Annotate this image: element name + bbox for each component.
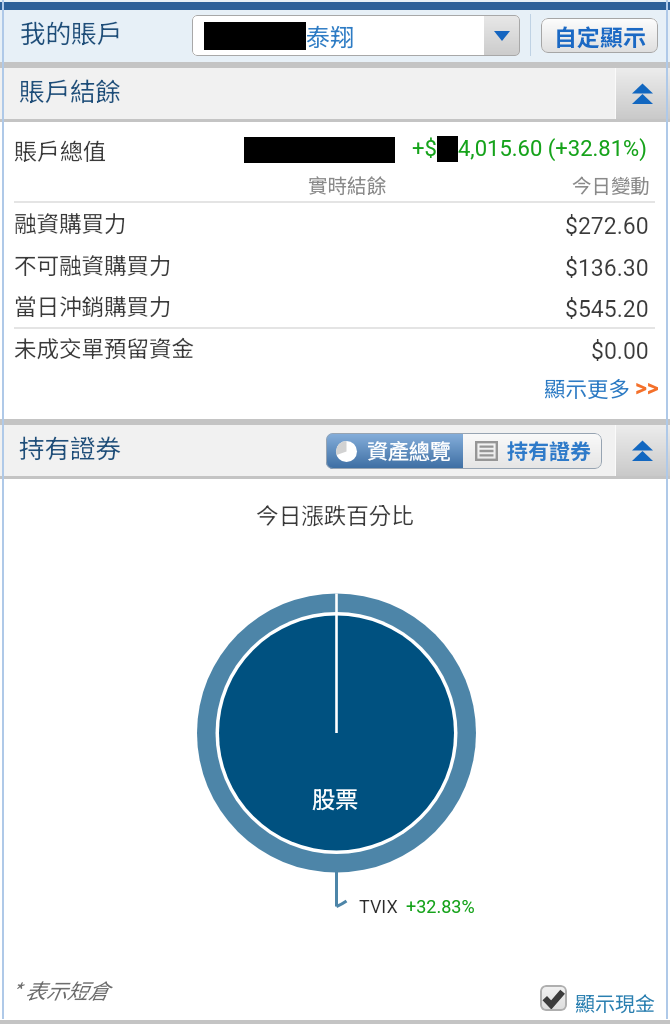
button[interactable]: 顯示更多 (544, 372, 659, 403)
button[interactable]: 融資購買力 (0, 203, 670, 244)
staticText: 不可融資購買力 (14, 248, 172, 281)
staticText: TVIX (359, 896, 398, 917)
staticText: $272.60 (565, 213, 649, 240)
staticText: 泰翔 (306, 18, 354, 53)
staticText: 持有證券 (507, 435, 591, 465)
button[interactable]: 持有證券 (463, 433, 602, 469)
staticText: +$ (412, 136, 437, 162)
staticText: 資產總覽 (367, 435, 451, 465)
button[interactable]: Collapse section (615, 68, 670, 119)
staticText: 4,015.60 (+32.81%) (458, 136, 647, 162)
staticText: >> (635, 375, 659, 402)
staticText: 今日漲跌百分比 (0, 498, 670, 531)
staticText: 融資購買力 (14, 206, 127, 239)
other: Select account (484, 15, 520, 56)
staticText: * 表示短倉 (10, 975, 109, 1005)
staticText: $136.30 (565, 255, 649, 282)
staticText: $0.00 (591, 338, 649, 365)
button[interactable]: 當日沖銷購買力 (0, 286, 670, 327)
staticText: 我的賬戶 (20, 13, 123, 50)
staticText: 今日變動 (572, 170, 651, 198)
button[interactable]: Collapse section (615, 425, 670, 476)
staticText: 賬戶總值 (14, 133, 106, 166)
button[interactable]: 顯示現金 (540, 983, 655, 1012)
staticText: 賬戶結餘 (19, 71, 122, 108)
button[interactable]: 泰翔 (192, 15, 520, 56)
staticText: 持有證券 (19, 428, 122, 465)
staticText: 自定顯示 (554, 19, 646, 52)
staticText: $545.20 (565, 296, 649, 323)
staticText: 當日沖銷購買力 (14, 289, 172, 322)
button[interactable]: 資產總覽 (326, 433, 463, 469)
button[interactable]: 不可融資購買力 (0, 245, 670, 286)
staticText: 實時結餘 (308, 170, 387, 198)
button[interactable]: 未成交單預留資金 (0, 328, 670, 369)
staticText: +32.83% (406, 896, 475, 917)
button[interactable]: 自定顯示 (541, 18, 658, 53)
staticText: 顯示現金 (575, 988, 655, 1017)
staticText: 股票 (0, 781, 670, 814)
staticText: 未成交單預留資金 (14, 331, 195, 364)
staticText: 顯示更多 (544, 372, 631, 403)
